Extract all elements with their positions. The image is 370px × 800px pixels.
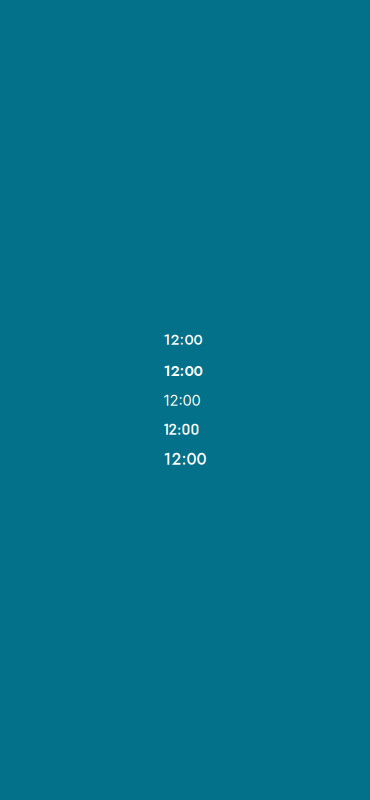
staticText: 12:00: [163, 448, 206, 471]
staticText: 12:00: [163, 360, 202, 382]
staticText: 12:00: [163, 392, 200, 409]
staticText: 12:00: [163, 419, 199, 438]
staticText: 12:00: [163, 329, 202, 350]
